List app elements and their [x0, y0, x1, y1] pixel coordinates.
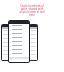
button[interactable] — [9, 44, 29, 48]
button[interactable] — [9, 48, 29, 52]
button[interactable] — [9, 52, 29, 56]
staticText: Check hundreds of tasks, shared with all… — [19, 4, 45, 17]
button[interactable] — [9, 36, 29, 40]
button[interactable] — [9, 32, 29, 36]
button[interactable] — [9, 24, 29, 28]
button[interactable] — [9, 40, 29, 44]
button[interactable] — [9, 28, 29, 32]
